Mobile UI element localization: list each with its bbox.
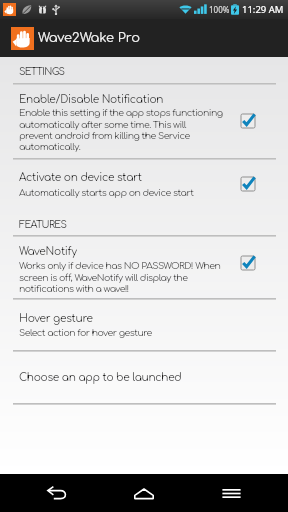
button[interactable] — [0, 298, 288, 351]
button[interactable] — [0, 83, 288, 158]
staticText: WaveNotify — [19, 246, 77, 258]
button[interactable]: Toggle setting — [238, 253, 260, 275]
button[interactable]: Home — [114, 474, 174, 512]
staticText: Hover gesture — [19, 313, 93, 325]
staticText: Enable this setting if the app stops fun… — [19, 108, 225, 152]
button[interactable]: Toggle setting — [238, 174, 260, 196]
staticText: Select action for hover gesture — [19, 328, 249, 338]
staticText: 100% — [209, 4, 230, 15]
staticText: Choose an app to be launched — [19, 372, 182, 384]
button[interactable] — [0, 350, 288, 403]
staticText: Enable/Disable Notification — [19, 94, 164, 106]
staticText: 11:29 AM — [242, 3, 284, 16]
staticText: Activate on device start — [19, 172, 142, 184]
button[interactable]: Recent apps — [201, 474, 261, 512]
button[interactable] — [0, 158, 288, 211]
staticText: Works only if device has NO PASSWORD! Wh… — [19, 261, 225, 294]
staticText: Automatically starts app on device start — [19, 188, 225, 198]
staticText: SETTINGS — [19, 66, 65, 77]
button[interactable] — [0, 235, 288, 298]
staticText: Wave2Wake Pro — [38, 31, 140, 45]
button[interactable]: Toggle setting — [238, 111, 260, 133]
button[interactable]: Back — [27, 474, 87, 512]
staticText: FEATURES — [19, 219, 67, 230]
